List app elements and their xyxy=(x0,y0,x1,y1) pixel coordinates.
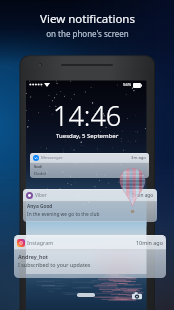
button[interactable]: Viber xyxy=(23,189,157,222)
staticText: Andrey_hot xyxy=(18,253,48,260)
button[interactable]: Instagram xyxy=(14,235,166,278)
staticText: Sod xyxy=(34,164,42,170)
staticText: 10min ago xyxy=(136,239,163,246)
staticText: 56% xyxy=(123,82,132,88)
staticText: 5min ago xyxy=(132,192,154,199)
staticText: Tuesday, 5 September xyxy=(56,132,119,140)
staticText: Viber xyxy=(35,192,47,199)
staticText: View notifications xyxy=(40,11,135,27)
staticText: Messenger xyxy=(41,155,63,161)
button[interactable]: Camera xyxy=(130,289,143,302)
staticText: on the phone's screen xyxy=(46,28,129,39)
staticText: In the evening we go to the club xyxy=(27,211,100,218)
staticText: I subscribed to your updates xyxy=(18,261,91,268)
staticText: Dodo) xyxy=(34,171,46,177)
staticText: 3m ago xyxy=(131,155,146,161)
staticText: 14:46 xyxy=(53,97,122,134)
staticText: Instagram xyxy=(27,239,54,246)
staticText: Anya Good xyxy=(27,203,53,210)
button[interactable]: Messenger xyxy=(30,153,149,178)
